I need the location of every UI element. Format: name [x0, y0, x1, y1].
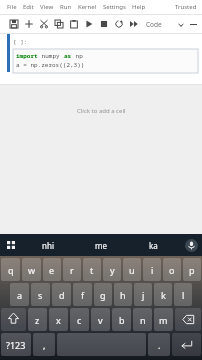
button[interactable]: Kernel: [75, 2, 100, 12]
button[interactable]: Open menu: [0, 234, 22, 256]
button[interactable]: k: [154, 283, 172, 306]
button[interactable]: Stop: [96, 16, 111, 32]
staticText: View: [40, 3, 54, 11]
button[interactable]: Edit: [20, 2, 37, 12]
staticText: .: [158, 339, 161, 351]
button[interactable]: Copy: [51, 16, 66, 32]
button[interactable]: s: [31, 283, 50, 306]
staticText: ?123: [6, 339, 26, 351]
button[interactable]: ka: [127, 234, 180, 256]
staticText: File: [7, 3, 17, 11]
staticText: p: [189, 264, 195, 276]
button[interactable]: n: [133, 308, 152, 331]
staticText: Run: [60, 3, 72, 11]
button[interactable]: Help: [129, 2, 149, 12]
staticText: d: [59, 289, 65, 301]
staticText: m: [159, 314, 168, 326]
button[interactable]: Paste: [66, 16, 81, 32]
button[interactable]: u: [123, 258, 141, 281]
staticText: as: [64, 52, 72, 60]
button[interactable]: a: [10, 283, 29, 306]
button[interactable]: Insert cell below: [21, 16, 36, 32]
button[interactable]: d: [52, 283, 71, 306]
button[interactable]: j: [134, 283, 152, 306]
button[interactable]: r: [63, 258, 81, 281]
staticText: ,: [43, 339, 46, 351]
staticText: i: [151, 264, 154, 276]
button[interactable]: import: [13, 49, 198, 73]
button[interactable]: Backspace: [175, 308, 201, 331]
button[interactable]: o: [163, 258, 181, 281]
button[interactable]: File: [4, 2, 20, 12]
button[interactable]: Restart kernel: [111, 16, 126, 32]
staticText: k: [161, 289, 166, 301]
button[interactable]: y: [103, 258, 121, 281]
button[interactable]: z: [28, 308, 47, 331]
button[interactable]: ,: [33, 333, 55, 356]
button[interactable]: Trusted: [172, 2, 200, 12]
button[interactable]: m: [154, 308, 173, 331]
button[interactable]: v: [91, 308, 110, 331]
button[interactable]: p: [183, 258, 201, 281]
staticText: x: [56, 314, 61, 326]
button[interactable]: q: [1, 258, 20, 281]
staticText: q: [8, 264, 14, 276]
staticText: l: [182, 289, 185, 301]
button[interactable]: Kernel status: [186, 17, 200, 31]
staticText: c: [77, 314, 82, 326]
staticText: np: [72, 52, 83, 60]
button[interactable]: ?123: [1, 333, 31, 356]
staticText: a = np.zeros((2,3)): [16, 61, 85, 69]
button[interactable]: Enter: [172, 333, 201, 356]
staticText: t: [90, 264, 94, 276]
button[interactable]: c: [70, 308, 89, 331]
button[interactable]: b: [112, 308, 131, 331]
button[interactable]: Voice input: [180, 234, 202, 256]
staticText: y: [110, 264, 115, 276]
staticText: a: [17, 289, 23, 301]
button[interactable]: h: [114, 283, 132, 306]
staticText: r: [70, 264, 74, 276]
staticText: e: [49, 264, 55, 276]
button[interactable]: Shift: [1, 308, 26, 331]
staticText: import: [16, 52, 38, 60]
button[interactable]: g: [94, 283, 112, 306]
button[interactable]: x: [49, 308, 68, 331]
staticText: [ ]:: [13, 38, 28, 46]
button[interactable]: Run: [57, 2, 75, 12]
staticText: h: [120, 289, 126, 301]
staticText: z: [35, 314, 40, 326]
staticText: Click to add a cell: [77, 107, 126, 115]
staticText: ka: [149, 240, 158, 251]
button[interactable]: i: [143, 258, 161, 281]
button[interactable]: l: [174, 283, 192, 306]
staticText: me: [95, 240, 107, 251]
staticText: b: [119, 314, 125, 326]
staticText: numpy: [38, 52, 64, 60]
button[interactable]: Cut: [36, 16, 51, 32]
button[interactable]: me: [74, 234, 127, 256]
button[interactable]: t: [83, 258, 101, 281]
staticText: u: [129, 264, 135, 276]
button[interactable]: View: [37, 2, 57, 12]
staticText: s: [38, 289, 43, 301]
button[interactable]: e: [43, 258, 61, 281]
staticText: w: [28, 264, 36, 276]
button[interactable]: nhi: [22, 234, 74, 256]
button[interactable]: .: [148, 333, 170, 356]
staticText: Help: [132, 3, 146, 11]
staticText: Settings: [103, 3, 126, 11]
button[interactable]: f: [73, 283, 92, 306]
button[interactable]: Run: [81, 16, 96, 32]
button[interactable]: Restart and run all: [126, 16, 141, 32]
button[interactable]: w: [22, 258, 41, 281]
button[interactable]: Code: [144, 20, 186, 29]
staticText: nhi: [42, 240, 54, 251]
button[interactable]: [57, 333, 146, 356]
staticText: n: [140, 314, 146, 326]
button[interactable]: Click to add a cell: [0, 89, 202, 133]
button[interactable]: Save: [6, 16, 21, 32]
button[interactable]: Settings: [100, 2, 129, 12]
staticText: j: [142, 289, 145, 301]
staticText: f: [81, 289, 85, 301]
